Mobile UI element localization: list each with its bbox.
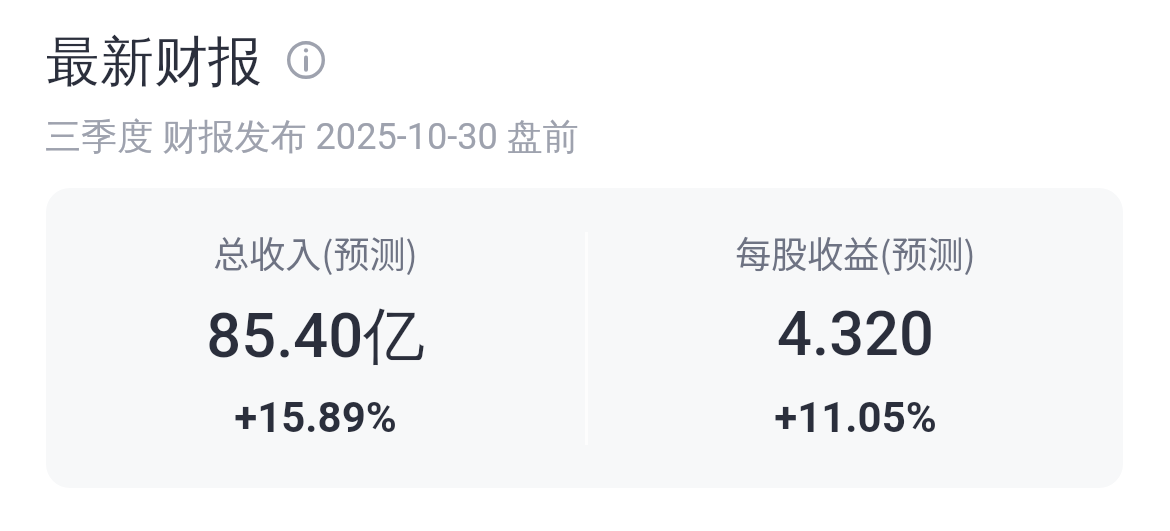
staticText: 三季度 财报发布 2025-10-30 盘前 xyxy=(45,114,579,159)
staticText: 每股收益(预测) xyxy=(588,226,1123,278)
staticText: 4.320 xyxy=(588,298,1123,370)
staticText: 85.40亿 xyxy=(46,298,585,375)
staticText: +11.05% xyxy=(588,393,1123,442)
staticText: 最新财报 xyxy=(46,28,262,96)
staticText: +15.89% xyxy=(46,393,585,442)
button[interactable]: Info xyxy=(284,38,328,82)
button[interactable]: 总收入(预测) xyxy=(46,188,1123,488)
staticText: 总收入(预测) xyxy=(46,226,585,278)
